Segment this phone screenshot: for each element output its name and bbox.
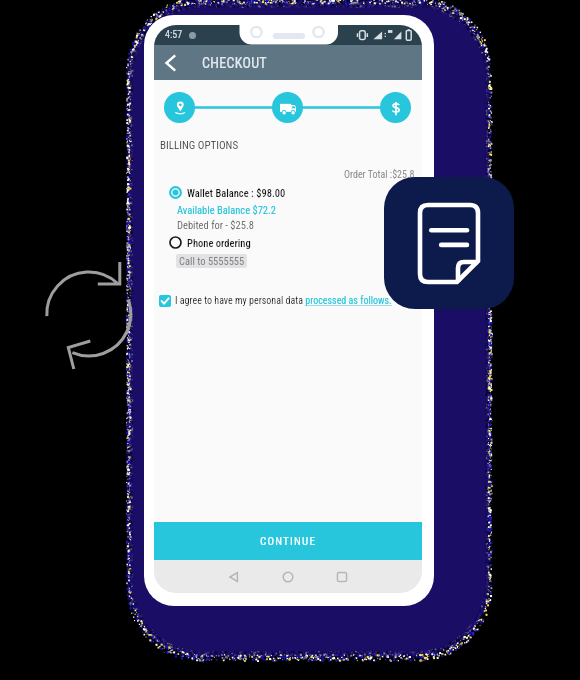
staticText: 4:57 [165,29,183,41]
button[interactable]: Call to 5555555 [176,254,247,268]
staticText: BILLING OPTIONS [160,139,239,152]
staticText: Order Total :$25.8 [344,169,415,181]
button[interactable]: Back [218,561,250,593]
button[interactable]: Home [272,561,304,593]
staticText: I agree to have my personal data process… [175,295,392,307]
button[interactable]: I agree to have my personal data process… [159,295,392,307]
staticText: Available Balance $72.2 [177,204,276,216]
staticText: CONTINUE [260,535,317,548]
button[interactable]: Phone ordering [169,236,251,249]
button[interactable]: Document [384,177,514,309]
staticText: Phone ordering [187,237,251,249]
button[interactable]: Location [164,92,195,123]
button[interactable]: Shipping [272,92,303,123]
button[interactable]: Wallet Balance : $98.00 [169,186,286,199]
button[interactable]: Recents [326,561,358,593]
button[interactable]: Payment [380,92,411,123]
staticText: Wallet Balance : $98.00 [187,187,286,199]
other: Refresh [40,265,138,363]
staticText: CHECKOUT [202,55,267,71]
button[interactable]: CONTINUE [154,522,422,560]
button[interactable]: Back [155,48,185,78]
staticText: Debited for - $25.8 [177,219,254,231]
staticText: Call to 5555555 [179,255,245,267]
